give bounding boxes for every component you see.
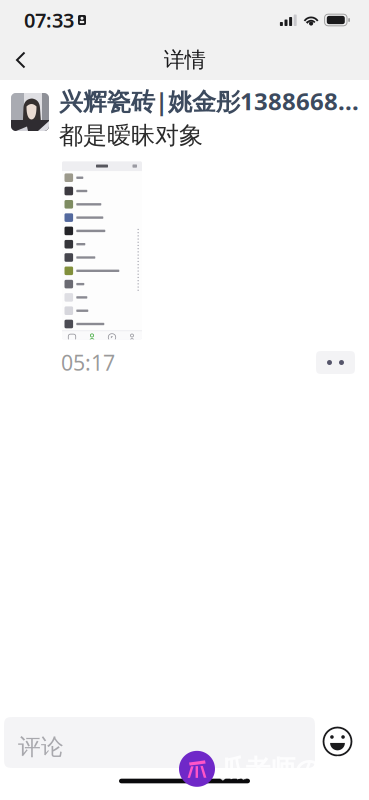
staticText: 05:17 [61, 348, 115, 377]
staticText: 详情 [163, 47, 205, 73]
staticText: 瓜老师の笔记 [220, 751, 369, 785]
staticText: 07:33 [24, 7, 74, 33]
staticText: 兴辉瓷砖|姚金彤1388668... [59, 85, 359, 117]
button[interactable]: Back [0, 41, 38, 78]
button[interactable]: 评论 [4, 717, 315, 768]
button[interactable]: More [316, 351, 355, 374]
staticText: 评论 [18, 733, 64, 761]
button[interactable]: Emoji [315, 717, 369, 756]
staticText: 都是暧昧对象 [59, 121, 203, 150]
